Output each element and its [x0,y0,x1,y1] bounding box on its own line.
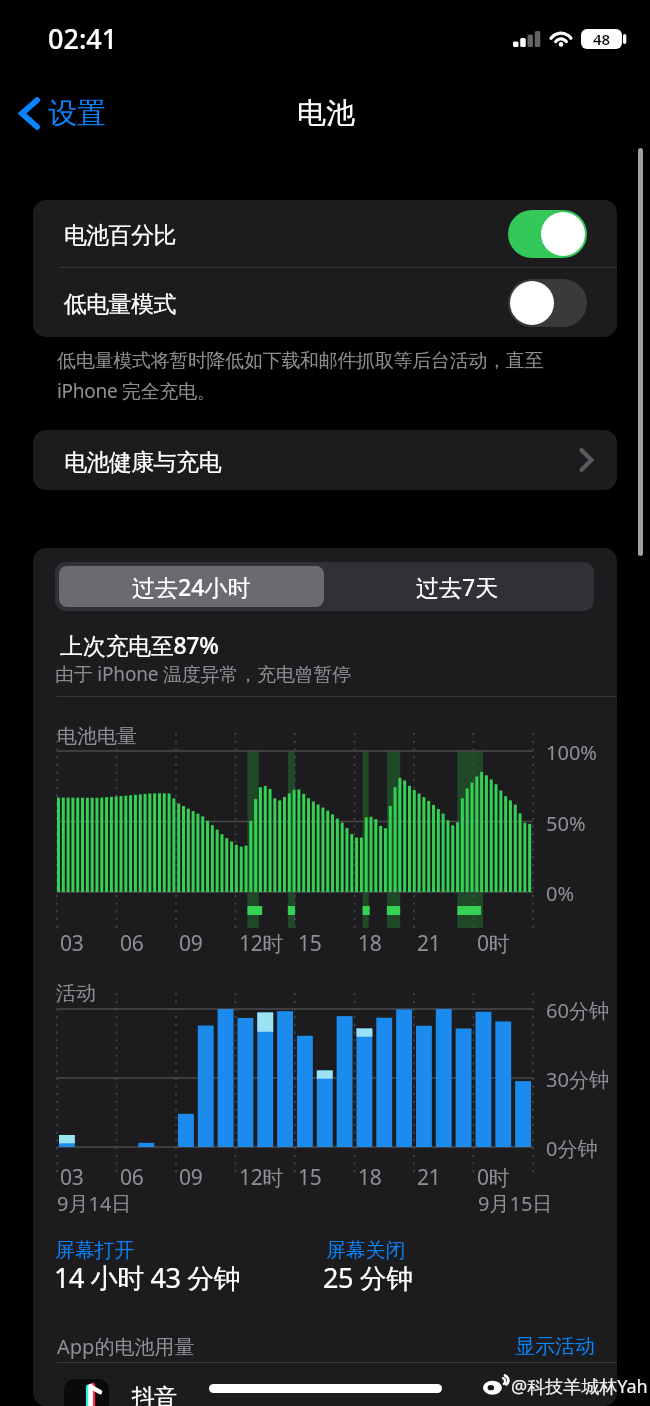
staticText: 电池百分比 [64,221,176,250]
staticText: 屏幕关闭 [326,1238,406,1263]
staticText: 由于 iPhone 温度异常，充电曾暂停 [55,661,351,687]
staticText: 电池 [297,95,355,132]
staticText: 过去7天 [416,571,499,602]
staticText: 设置 [48,95,106,132]
button[interactable]: 电池健康与充电 [33,430,617,490]
staticText: 14 小时 43 分钟 [54,1259,241,1296]
button[interactable]: 电池百分比 [33,200,617,267]
staticText: 活动 [56,981,96,1006]
staticText: 02:41 [48,20,118,57]
staticText: 25 分钟 [323,1259,413,1296]
staticText: App的电池用量 [57,1333,195,1360]
staticText: 50% [546,810,586,837]
staticText: 屏幕打开 [55,1238,135,1263]
staticText: 18 [358,1163,382,1192]
staticText: 06 [120,929,144,958]
staticText: 06 [120,1163,144,1192]
staticText: 上次充电至87% [60,629,219,660]
staticText: 电池健康与充电 [64,448,221,477]
staticText: 0时 [477,1163,510,1192]
staticText: @科技羊城林Yah [511,1374,648,1399]
staticText: 0% [546,880,575,907]
staticText: 9月14日 [57,1190,132,1217]
staticText: 抖音 [132,1383,177,1406]
staticText: 12时 [239,1163,284,1192]
staticText: 低电量模式 [64,290,176,319]
staticText: 21 [417,929,441,958]
staticText: 09 [179,929,203,958]
staticText: iPhone 完全充电。 [57,378,216,404]
staticText: 03 [60,1163,84,1192]
staticText: 15 [298,929,322,958]
staticText: 60分钟 [546,997,609,1024]
button[interactable]: 设置 [12,88,114,139]
staticText: 03 [60,929,84,958]
staticText: 9月15日 [478,1190,553,1217]
staticText: 21 [417,1163,441,1192]
button[interactable]: 低电量模式 [33,268,617,337]
staticText: 18 [358,929,382,958]
staticText: 0分钟 [546,1135,598,1162]
staticText: 低电量模式将暂时降低如下载和邮件抓取等后台活动，直至 [57,349,544,373]
button[interactable]: 过去24小时 [59,566,324,607]
staticText: 电池电量 [57,724,137,749]
staticText: 12时 [239,929,284,958]
staticText: 100% [546,739,597,766]
staticText: 30分钟 [546,1066,609,1093]
staticText: 过去24小时 [132,571,251,602]
staticText: 09 [179,1163,203,1192]
button[interactable]: 过去7天 [324,566,590,607]
staticText: 48 [593,29,611,49]
staticText: 0时 [477,929,510,958]
button[interactable]: 显示活动 [515,1334,617,1359]
staticText: 15 [298,1163,322,1192]
